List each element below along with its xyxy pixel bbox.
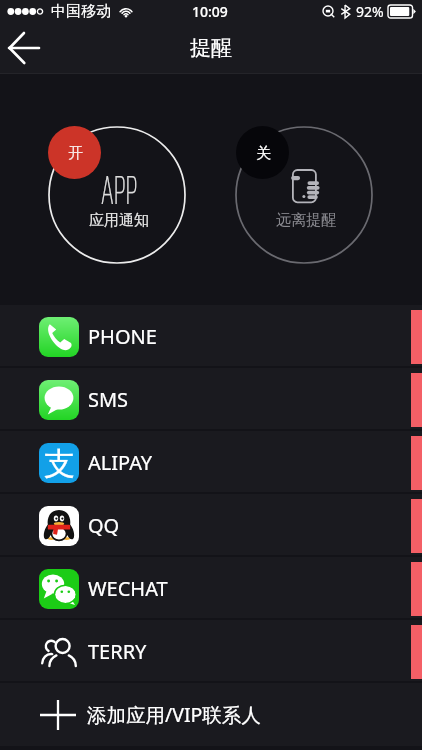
staticText: 添加应用/VIP联系人 — [87, 701, 261, 728]
button[interactable]: SMS — [0, 368, 422, 431]
staticText: 远离提醒 — [266, 211, 346, 230]
staticText: 92% — [356, 2, 384, 21]
staticText: TERRY — [88, 638, 147, 665]
staticText: 关 — [256, 144, 271, 163]
staticText: 应用通知 — [79, 211, 159, 230]
button[interactable]: 关 — [236, 126, 289, 179]
staticText: 提醒 — [190, 35, 232, 61]
staticText: WECHAT — [88, 575, 168, 602]
button[interactable]: 开 — [48, 126, 101, 179]
button[interactable]: 添加应用/VIP联系人 — [0, 683, 422, 746]
staticText: 中国移动 — [51, 2, 111, 21]
button[interactable]: WECHAT — [0, 557, 422, 620]
staticText: APP — [91, 159, 146, 222]
button[interactable]: PHONE — [0, 305, 422, 368]
staticText: 开 — [68, 144, 83, 163]
staticText: QQ — [88, 512, 120, 539]
staticText: 10:09 — [192, 2, 228, 21]
staticText: SMS — [88, 386, 129, 413]
button[interactable]: TERRY — [0, 620, 422, 683]
button[interactable]: Back — [0, 24, 48, 72]
staticText: PHONE — [88, 323, 157, 350]
button[interactable]: QQ — [0, 494, 422, 557]
button[interactable]: 支 — [0, 431, 422, 494]
staticText: 支 — [44, 444, 75, 483]
staticText: ALIPAY — [88, 449, 153, 476]
